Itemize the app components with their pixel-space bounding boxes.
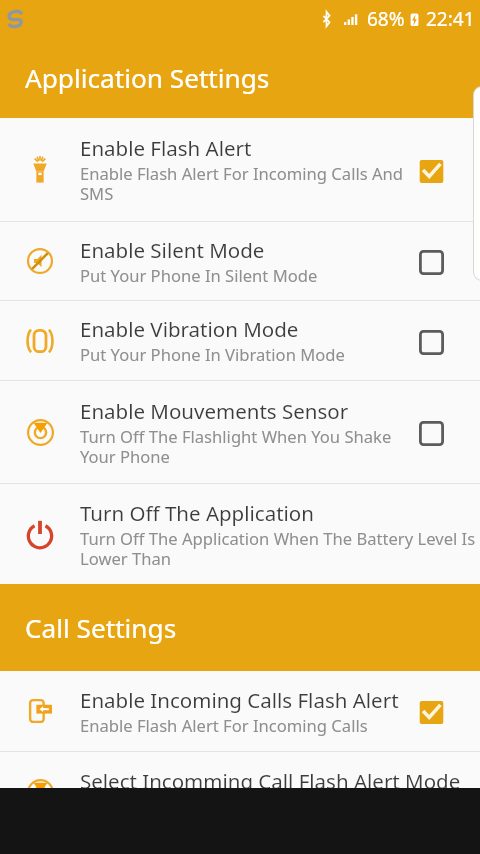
staticText: Application Settings (25, 60, 270, 96)
staticText: Enable Incoming Calls Flash Alert (80, 686, 399, 714)
staticText: Select Incomming Call Flash Alert Mode (80, 767, 461, 795)
staticText: Enable Flash Alert For Incoming Calls An… (80, 162, 410, 205)
staticText: Turn Off The Application When The Batter… (80, 527, 480, 570)
staticText: Enable Vibration Mode (80, 315, 299, 343)
staticText: Put Your Phone In Silent Mode (80, 264, 318, 287)
button[interactable]: Enable Mouvements Sensor (0, 381, 480, 483)
staticText: Enable Flash Alert (80, 134, 252, 162)
staticText: Enable Silent Mode (80, 236, 265, 264)
button[interactable]: Unchecked (419, 421, 444, 446)
button[interactable]: Turn Off The Application (0, 484, 480, 584)
staticText: Enable Mouvements Sensor (80, 397, 349, 425)
staticText: Turn Off The Flashlight When You Shake Y… (80, 425, 410, 468)
button[interactable]: Enable Incoming Calls Flash Alert (0, 671, 480, 751)
staticText: Call Settings (25, 610, 177, 646)
button[interactable]: Unchecked (419, 330, 444, 355)
button[interactable]: Unchecked (419, 250, 444, 275)
button[interactable]: Select Incomming Call Flash Alert Mode (0, 752, 480, 832)
staticText: Put Your Phone In Vibration Mode (80, 343, 345, 366)
button[interactable]: Checked (419, 159, 444, 184)
staticText: 22:41 (426, 6, 475, 32)
staticText: Enable Flash Alert For Incoming Calls (80, 714, 368, 737)
staticText: Turn Off The Application (80, 499, 314, 527)
staticText: 68% (367, 6, 405, 32)
button[interactable]: Enable Flash Alert (0, 118, 480, 221)
button[interactable]: Enable Vibration Mode (0, 301, 480, 380)
button[interactable]: Checked (419, 700, 444, 725)
button[interactable]: Enable Silent Mode (0, 222, 480, 300)
other: App icon (6, 10, 24, 28)
